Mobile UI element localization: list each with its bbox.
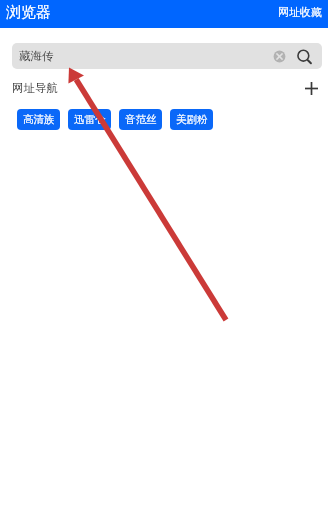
button[interactable]: Clear text xyxy=(269,46,290,67)
staticText: 网址收藏 xyxy=(278,5,322,19)
button[interactable]: 迅雷仓 xyxy=(68,109,111,130)
button[interactable]: 藏海传 xyxy=(12,43,322,69)
staticText: 美剧粉 xyxy=(176,113,208,126)
button[interactable]: 网址收藏 xyxy=(278,5,328,19)
staticText: 高清族 xyxy=(23,113,55,126)
button[interactable]: Search xyxy=(292,45,315,68)
button[interactable]: 音范丝 xyxy=(119,109,162,130)
staticText: 迅雷仓 xyxy=(74,113,106,126)
staticText: 音范丝 xyxy=(125,113,157,126)
staticText: 网址导航 xyxy=(12,81,58,95)
button[interactable]: 美剧粉 xyxy=(170,109,213,130)
button[interactable]: Add site xyxy=(302,79,320,97)
button[interactable]: 高清族 xyxy=(17,109,60,130)
staticText: 浏览器 xyxy=(6,3,51,22)
staticText: 藏海传 xyxy=(19,49,54,63)
